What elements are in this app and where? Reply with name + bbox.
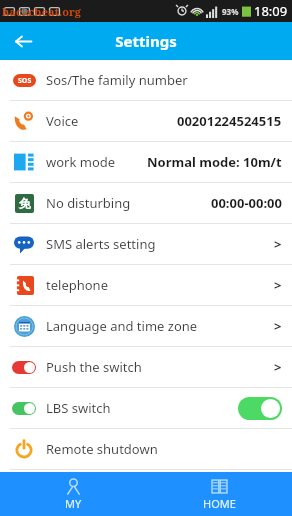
staticText: No disturbing [46,194,131,212]
button[interactable]: LBS switch [0,388,292,429]
button[interactable]: Voice [0,101,292,142]
button[interactable]: work mode [0,142,292,183]
staticText: > [274,235,282,253]
button[interactable]: SMS alerts setting [0,224,292,265]
staticText: HOME [203,496,236,511]
staticText: Settings [115,31,177,51]
staticText: Push the switch [46,358,142,376]
button[interactable]: Back [6,24,40,58]
button[interactable]: 免 [0,183,292,224]
staticText: SOS [18,76,32,86]
button[interactable]: Remote shutdown [0,429,292,470]
button[interactable]: telephone [0,265,292,306]
staticText: 00201224524515 [177,112,282,130]
staticText: Remote shutdown [46,440,158,458]
staticText: > [274,276,282,294]
staticText: Voice [46,112,79,130]
staticText: 18:09 [254,2,288,20]
staticText: Normal mode: 10m/t [147,153,282,171]
staticText: MY [65,496,82,511]
staticText: telephone [46,276,108,294]
button[interactable]: Language and time zone [0,306,292,347]
button[interactable]: MY [0,472,146,516]
staticText: 免 [19,196,31,211]
staticText: work mode [46,153,116,171]
staticText: > [274,317,282,335]
button[interactable]: Push the switch [0,347,292,388]
button[interactable]: LBS switch toggle [238,397,282,420]
staticText: > [274,358,282,376]
staticText: Sos/The family number [46,71,188,89]
staticText: 00:00-00:00 [211,194,282,212]
staticText: 93% [222,6,239,17]
staticText: LBS switch [46,399,111,417]
staticText: Language and time zone [46,317,198,335]
button[interactable]: SOS [0,60,292,101]
staticText: SMS alerts setting [46,235,156,253]
staticText: hackcheat.org [2,4,81,19]
button[interactable]: HOME [146,472,292,516]
